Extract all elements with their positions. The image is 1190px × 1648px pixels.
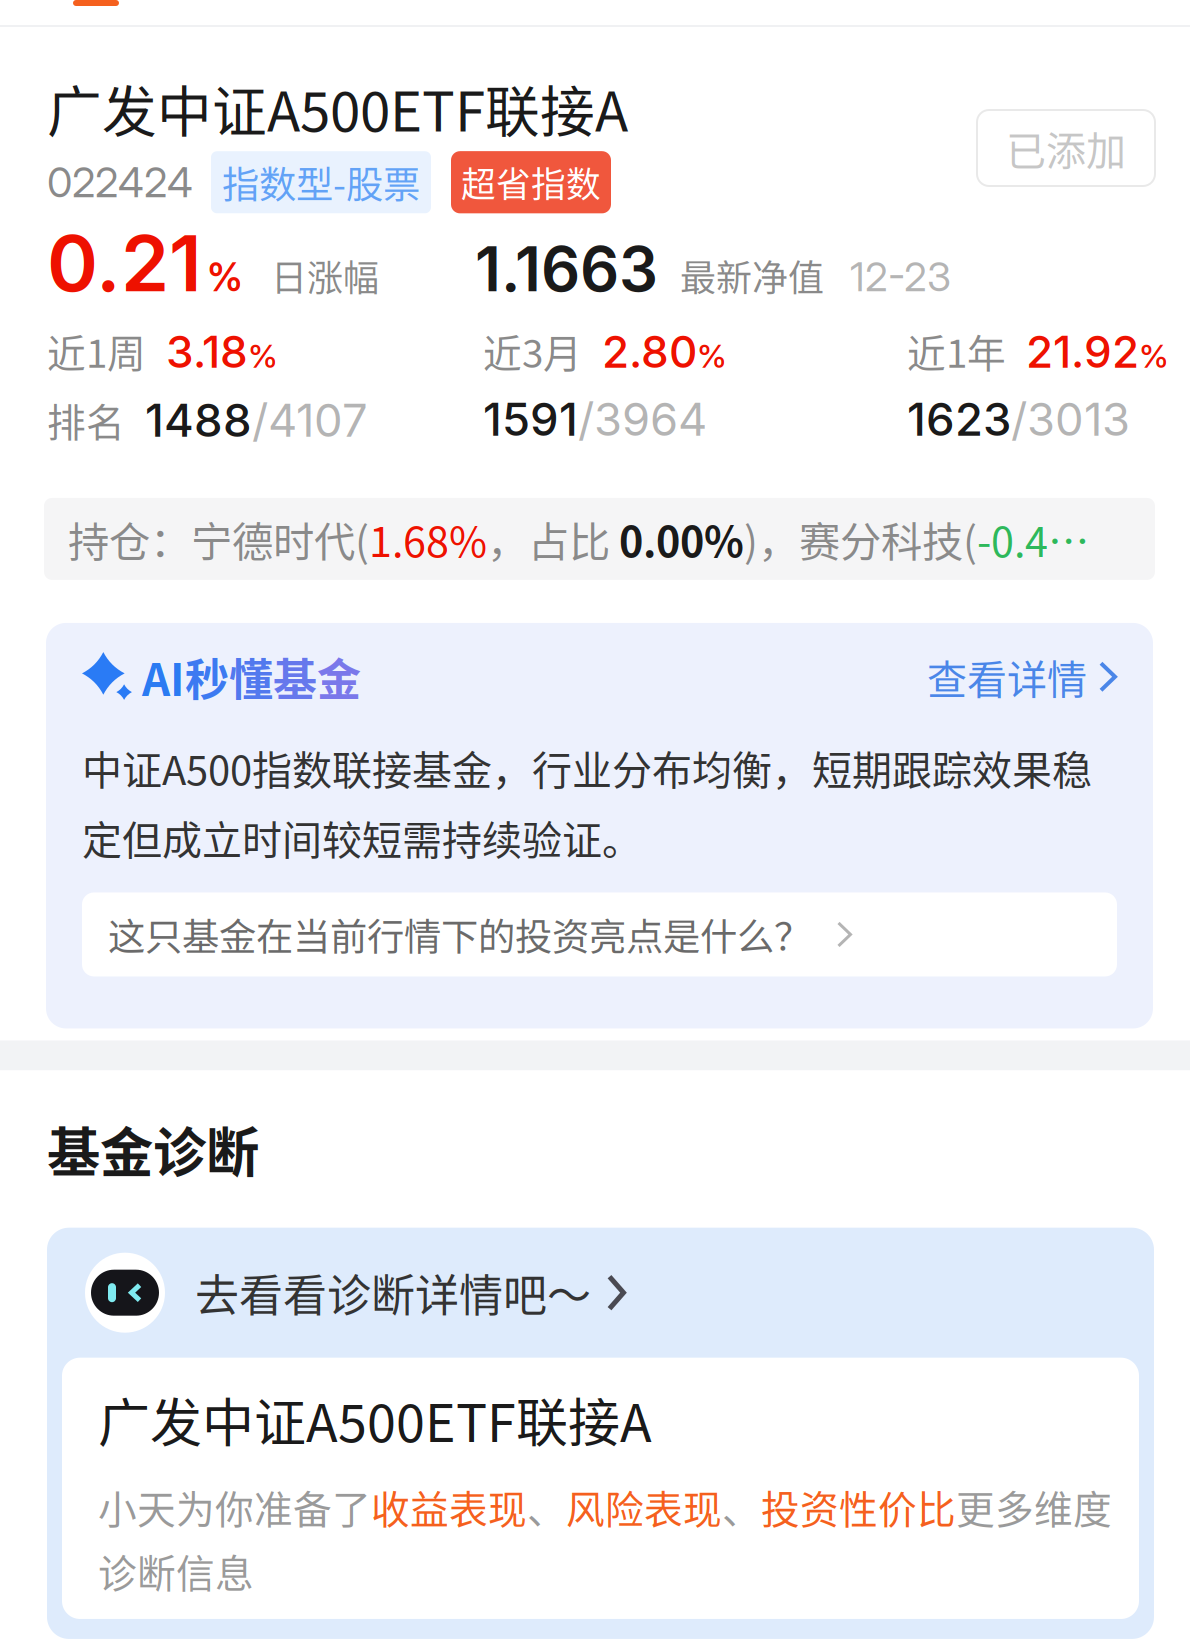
staticText: % bbox=[1139, 337, 1169, 375]
staticText: 近1年 bbox=[907, 323, 1006, 379]
staticText: 已添加 bbox=[1006, 119, 1126, 177]
staticText: 1623 bbox=[907, 392, 1011, 447]
staticText: % bbox=[207, 254, 243, 301]
staticText: 广发中证A500ETF联接A bbox=[47, 68, 628, 147]
staticText: 、 bbox=[722, 1479, 761, 1535]
staticText: 21.92 bbox=[1026, 325, 1139, 378]
button[interactable]: 去看看诊断详情吧～ bbox=[47, 1228, 1154, 1358]
staticText: 投资性价比 bbox=[761, 1479, 956, 1535]
staticText: 1488 bbox=[145, 393, 252, 448]
staticText: 最新净值 bbox=[680, 249, 824, 302]
staticText: 2.80 bbox=[602, 325, 697, 378]
staticText: 近3月 bbox=[483, 323, 582, 379]
staticText: 秒 bbox=[185, 645, 229, 709]
staticText: 更多维度 bbox=[956, 1479, 1112, 1535]
staticText: 0.00% bbox=[619, 509, 744, 569]
staticText: 1.1663 bbox=[475, 232, 658, 306]
staticText: % bbox=[697, 337, 727, 375]
staticText: 12-23 bbox=[850, 252, 951, 301]
staticText: /3013 bbox=[1011, 392, 1130, 447]
staticText: 日涨幅 bbox=[271, 249, 379, 302]
staticText: 收益表现 bbox=[371, 1479, 527, 1535]
staticText: 近1周 bbox=[47, 323, 146, 379]
staticText: 排名 bbox=[47, 392, 125, 448]
staticText: /3964 bbox=[578, 392, 707, 447]
button[interactable]: 这只基金在当前行情下的投资亮点是什么？ bbox=[82, 892, 1117, 976]
staticText: % bbox=[248, 337, 278, 375]
staticText: -0.4… bbox=[977, 509, 1089, 569]
staticText: 查看详情 bbox=[927, 648, 1087, 706]
staticText: 1591 bbox=[483, 392, 578, 447]
button[interactable]: 已添加 bbox=[977, 110, 1155, 186]
staticText: 0.21 bbox=[47, 216, 202, 310]
staticText: 持仓：宁德时代( bbox=[68, 509, 369, 569]
staticText: AI bbox=[142, 645, 185, 709]
staticText: 广发中证A500ETF联接A bbox=[98, 1382, 652, 1457]
staticText: 022424 bbox=[47, 157, 193, 207]
staticText: 超省指数 bbox=[461, 157, 601, 207]
staticText: 懂 bbox=[229, 645, 273, 709]
staticText: )，赛分科技( bbox=[744, 509, 977, 569]
staticText: 诊断信息 bbox=[98, 1543, 254, 1599]
staticText: 3.18 bbox=[166, 325, 248, 378]
staticText: 指数型-股票 bbox=[222, 155, 420, 209]
staticText: 去看看诊断详情吧～ bbox=[195, 1261, 591, 1324]
button[interactable]: 查看详情 bbox=[927, 648, 1117, 706]
staticText: 中证A500指数联接基金，行业分布均衡，短期跟踪效果稳定但成立时间较短需持续验证… bbox=[82, 739, 1092, 866]
staticText: 、 bbox=[527, 1479, 566, 1535]
staticText: 金 bbox=[317, 645, 361, 709]
staticText: 1.68% bbox=[369, 509, 487, 569]
staticText: 基 bbox=[273, 645, 317, 709]
staticText: ，占比 bbox=[487, 509, 619, 569]
staticText: 小天为你准备了 bbox=[98, 1479, 371, 1535]
staticText: 基金诊断 bbox=[47, 1110, 259, 1188]
staticText: 这只基金在当前行情下的投资亮点是什么？ bbox=[108, 907, 811, 961]
staticText: /4107 bbox=[252, 393, 368, 448]
staticText: 风险表现 bbox=[566, 1479, 722, 1535]
